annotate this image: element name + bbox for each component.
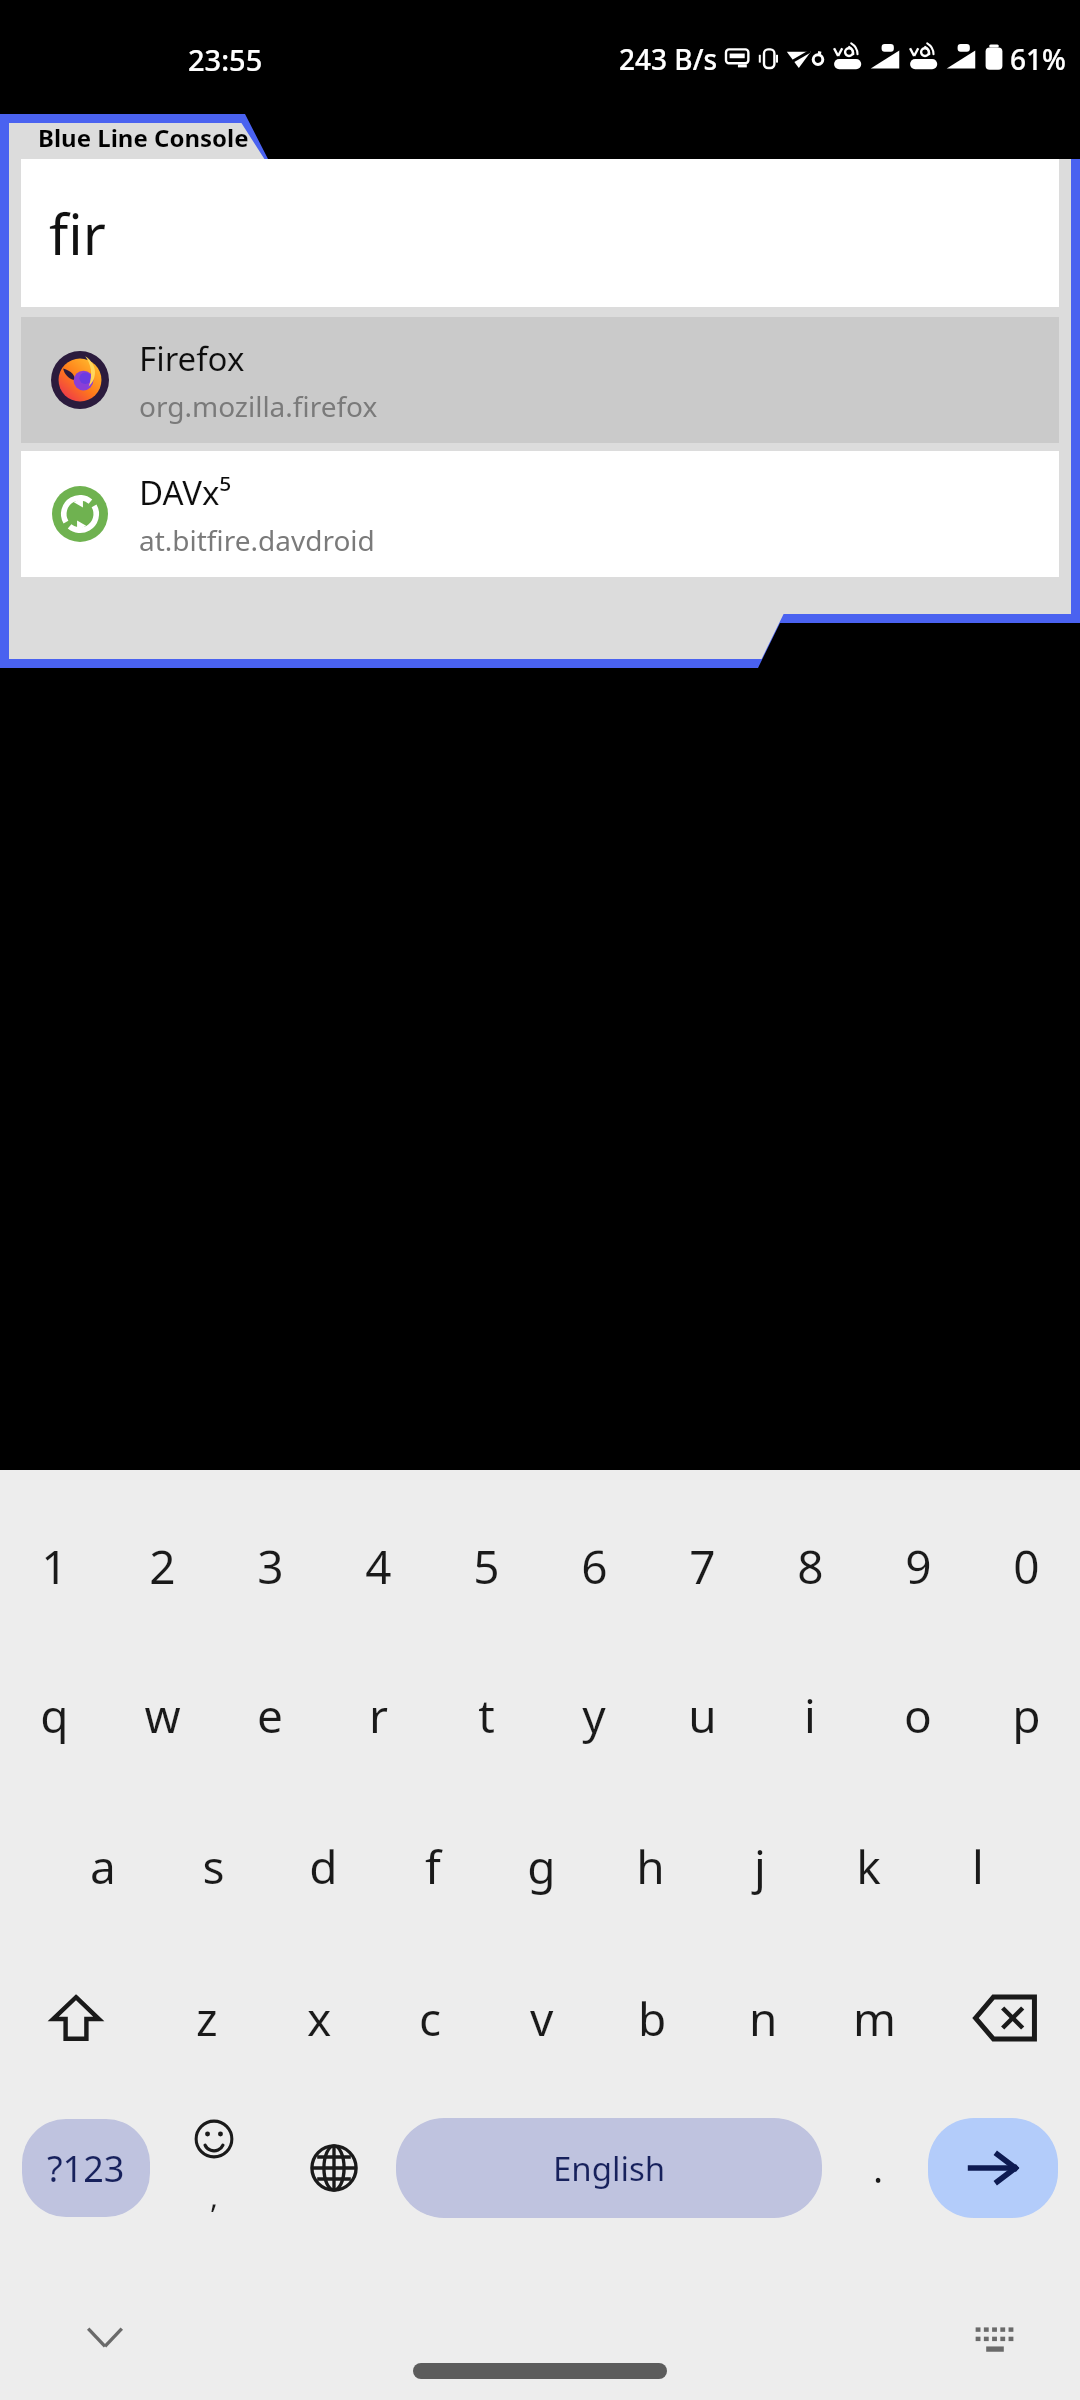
staticText: m bbox=[853, 1987, 897, 2050]
staticText: 9 bbox=[905, 1535, 932, 1598]
staticText: 5 bbox=[473, 1535, 500, 1598]
button[interactable]: 7 bbox=[648, 1492, 756, 1640]
staticText: 243 B/s bbox=[619, 40, 718, 78]
staticText: English bbox=[553, 2146, 666, 2191]
staticText: 7 bbox=[689, 1535, 716, 1598]
staticText: 3 bbox=[257, 1535, 284, 1598]
button[interactable]: y bbox=[540, 1640, 648, 1790]
button[interactable]: u bbox=[648, 1640, 756, 1790]
staticText: n bbox=[749, 1987, 778, 2050]
button[interactable]: Switch keyboard bbox=[960, 2306, 1030, 2376]
staticText: d bbox=[309, 1835, 338, 1898]
button[interactable]: 4 bbox=[324, 1492, 432, 1640]
staticText: c bbox=[419, 1987, 442, 2050]
button[interactable]: g bbox=[487, 1790, 596, 1942]
staticText: 6 bbox=[581, 1535, 608, 1598]
button[interactable]: j bbox=[705, 1790, 814, 1942]
staticText: r bbox=[369, 1684, 388, 1747]
button[interactable]: 5 bbox=[432, 1492, 540, 1640]
button[interactable]: Backspace bbox=[930, 1942, 1080, 2094]
staticText: , bbox=[210, 2176, 219, 2217]
staticText: f bbox=[425, 1835, 441, 1898]
staticText: fir bbox=[49, 195, 106, 271]
staticText: 61% bbox=[1010, 40, 1066, 78]
staticText: p bbox=[1012, 1684, 1041, 1747]
button[interactable]: fir bbox=[21, 159, 1059, 307]
button[interactable]: . bbox=[828, 2108, 928, 2228]
button[interactable]: v bbox=[486, 1942, 597, 2094]
staticText: h bbox=[636, 1835, 665, 1898]
button[interactable]: t bbox=[432, 1640, 540, 1790]
staticText: g bbox=[527, 1835, 556, 1898]
button[interactable]: n bbox=[708, 1942, 819, 2094]
button[interactable]: 6 bbox=[540, 1492, 648, 1640]
button[interactable]: Emoji bbox=[150, 2108, 278, 2228]
staticText: u bbox=[688, 1684, 717, 1747]
staticText: i bbox=[804, 1684, 816, 1747]
staticText: a bbox=[90, 1835, 116, 1898]
button[interactable]: Hide keyboard bbox=[70, 2302, 140, 2372]
button[interactable]: i bbox=[756, 1640, 864, 1790]
button[interactable]: m bbox=[819, 1942, 930, 2094]
staticText: z bbox=[196, 1987, 218, 2050]
button[interactable]: a bbox=[48, 1790, 158, 1942]
button[interactable]: 8 bbox=[756, 1492, 864, 1640]
button[interactable]: Firefox bbox=[21, 317, 1059, 443]
staticText: DAVx⁵ bbox=[139, 470, 232, 515]
button[interactable]: c bbox=[375, 1942, 486, 2094]
button[interactable]: k bbox=[814, 1790, 923, 1942]
button[interactable]: s bbox=[158, 1790, 268, 1942]
staticText: 23:55 bbox=[188, 40, 263, 79]
button[interactable]: e bbox=[216, 1640, 324, 1790]
button[interactable]: d bbox=[268, 1790, 378, 1942]
button[interactable]: ?123 bbox=[22, 2119, 150, 2217]
staticText: y bbox=[582, 1684, 606, 1747]
staticText: 4 bbox=[365, 1535, 392, 1598]
button[interactable]: o bbox=[864, 1640, 972, 1790]
button[interactable]: 0 bbox=[972, 1492, 1080, 1640]
button[interactable]: Home bbox=[413, 2363, 667, 2379]
button[interactable]: DAVx⁵ bbox=[21, 451, 1059, 577]
button[interactable]: 9 bbox=[864, 1492, 972, 1640]
staticText: . bbox=[873, 2142, 884, 2194]
staticText: q bbox=[40, 1684, 69, 1747]
staticText: x bbox=[307, 1987, 332, 2050]
button[interactable]: f bbox=[378, 1790, 487, 1942]
staticText: w bbox=[144, 1684, 181, 1747]
staticText: o bbox=[904, 1684, 932, 1747]
staticText: Firefox bbox=[139, 336, 245, 381]
staticText: Blue Line Console bbox=[38, 121, 249, 154]
staticText: ?123 bbox=[47, 2144, 125, 2193]
button[interactable]: x bbox=[263, 1942, 375, 2094]
staticText: v bbox=[530, 1987, 554, 2050]
button[interactable]: b bbox=[597, 1942, 708, 2094]
button[interactable]: p bbox=[972, 1640, 1080, 1790]
staticText: s bbox=[202, 1835, 225, 1898]
staticText: 8 bbox=[797, 1535, 824, 1598]
button[interactable]: 1 bbox=[0, 1492, 108, 1640]
staticText: j bbox=[754, 1835, 766, 1898]
button[interactable]: r bbox=[324, 1640, 432, 1790]
button[interactable]: l bbox=[923, 1790, 1032, 1942]
staticText: k bbox=[856, 1835, 881, 1898]
button[interactable]: z bbox=[151, 1942, 263, 2094]
button[interactable]: Change keyboard language bbox=[278, 2108, 390, 2228]
button[interactable]: h bbox=[596, 1790, 705, 1942]
button[interactable]: Enter bbox=[928, 2118, 1058, 2218]
staticText: at.bitfire.davdroid bbox=[139, 521, 375, 559]
staticText: 1 bbox=[41, 1535, 68, 1598]
staticText: 0 bbox=[1013, 1535, 1040, 1598]
staticText: b bbox=[638, 1987, 667, 2050]
button[interactable]: English bbox=[396, 2118, 822, 2218]
button[interactable]: w bbox=[108, 1640, 216, 1790]
button[interactable]: 3 bbox=[216, 1492, 324, 1640]
staticText: t bbox=[478, 1684, 495, 1747]
staticText: l bbox=[972, 1835, 984, 1898]
button[interactable]: q bbox=[0, 1640, 108, 1790]
button[interactable]: Shift bbox=[0, 1942, 151, 2094]
staticText: e bbox=[257, 1684, 283, 1747]
staticText: 2 bbox=[149, 1535, 176, 1598]
button[interactable]: 2 bbox=[108, 1492, 216, 1640]
staticText: org.mozilla.firefox bbox=[139, 387, 378, 425]
